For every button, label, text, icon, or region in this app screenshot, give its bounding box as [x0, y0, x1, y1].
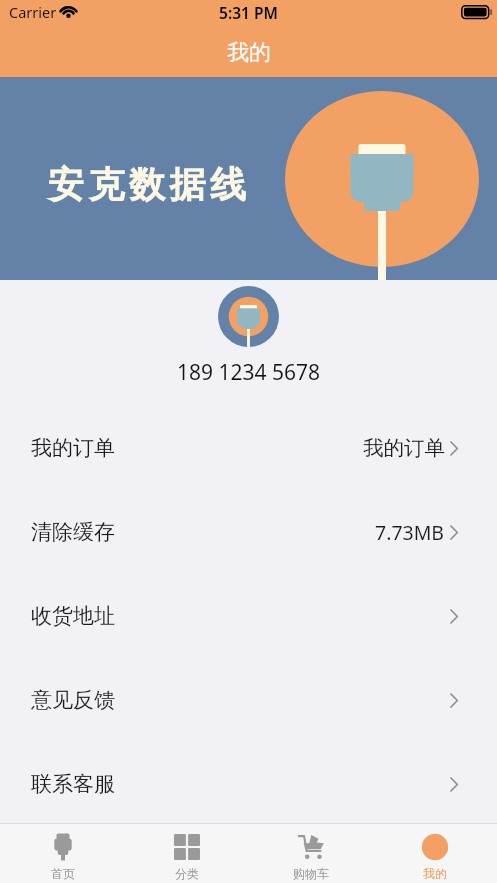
- button[interactable]: Profile: [373, 824, 497, 883]
- staticText: 分类: [175, 866, 199, 881]
- staticText: 清除缓存: [31, 519, 115, 545]
- button[interactable]: 我的订单: [0, 406, 497, 490]
- button[interactable]: Profile photo: [218, 286, 279, 347]
- staticText: 收货地址: [31, 603, 115, 629]
- button[interactable]: 清除缓存: [0, 490, 497, 574]
- staticText: 189 1234 5678: [0, 358, 497, 387]
- staticText: 购物车: [293, 866, 329, 881]
- button[interactable]: 联系客服: [0, 742, 497, 826]
- staticText: 我的订单: [31, 435, 115, 461]
- staticText: 我的订单: [363, 435, 445, 461]
- button[interactable]: 意见反馈: [0, 658, 497, 742]
- staticText: 我的: [423, 866, 447, 881]
- staticText: 7.73MB: [375, 519, 445, 546]
- staticText: 安克数据线: [48, 162, 251, 207]
- button[interactable]: 收货地址: [0, 574, 497, 658]
- button[interactable]: Home: [0, 824, 125, 883]
- staticText: 意见反馈: [31, 687, 115, 713]
- staticText: 首页: [51, 866, 75, 881]
- staticText: Carrier: [9, 2, 57, 22]
- button[interactable]: Cart: [249, 824, 373, 883]
- staticText: 联系客服: [31, 771, 115, 797]
- staticText: 5:31 PM: [0, 2, 497, 23]
- button[interactable]: Categories: [125, 824, 249, 883]
- staticText: 我的: [227, 39, 271, 67]
